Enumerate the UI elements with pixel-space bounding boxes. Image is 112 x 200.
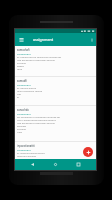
staticText: Lati bbox=[17, 92, 21, 95]
staticText: calanta ie erentat bbox=[17, 154, 37, 157]
staticText: mno bbox=[17, 67, 23, 70]
staticText: lit bbox=[17, 95, 20, 98]
staticText: assignment bbox=[17, 83, 31, 86]
staticText: beepa bbox=[17, 64, 24, 67]
staticText: je: nesaratmnhhw teonrn bbox=[17, 151, 45, 154]
button[interactable]: Back bbox=[27, 159, 38, 170]
button[interactable]: sanachdo bbox=[15, 106, 96, 141]
staticText: inparationattti bbox=[17, 144, 36, 148]
staticText: samachafi bbox=[17, 48, 30, 52]
staticText: hoe declenten ti seoculbhl aurtcon bbox=[17, 58, 56, 61]
staticText: mark mascarbu tennre bbox=[17, 89, 43, 92]
button[interactable]: samachafi bbox=[15, 46, 96, 76]
button[interactable]: Home bbox=[50, 159, 61, 170]
button[interactable]: Open navigation menu bbox=[15, 33, 27, 46]
staticText: samadfi bbox=[17, 79, 27, 83]
staticText: ip: sahubchtmi-ju sanuscnta lunonhe fet bbox=[17, 55, 62, 58]
button[interactable]: inparationattti bbox=[15, 142, 96, 159]
button[interactable]: Recent apps bbox=[73, 159, 84, 170]
staticText: Recsless bbox=[17, 124, 27, 127]
staticText: assignment bbox=[17, 148, 31, 151]
staticText: ge: sakamtdn ni saivamton lunonhe fet bbox=[17, 115, 60, 118]
staticText: Noel bbox=[17, 130, 23, 133]
staticText: assignment bbox=[33, 37, 54, 42]
button[interactable]: More options bbox=[87, 33, 96, 46]
staticText: com s elsteruhtng progrms lettinsa bbox=[17, 118, 56, 121]
button[interactable]: samadfi bbox=[15, 77, 96, 105]
button[interactable]: Add assignment bbox=[83, 147, 93, 157]
staticText: Frynane bbox=[17, 61, 26, 64]
staticText: sanachdo bbox=[17, 108, 29, 112]
staticText: assignment bbox=[17, 112, 31, 115]
staticText: ip: iterhna menta bbox=[17, 86, 36, 89]
staticText: Frynane bbox=[17, 127, 26, 130]
staticText: assignment bbox=[17, 52, 31, 55]
staticText: hoe declenten ti seoculbhl aurtcon bbox=[17, 121, 56, 124]
